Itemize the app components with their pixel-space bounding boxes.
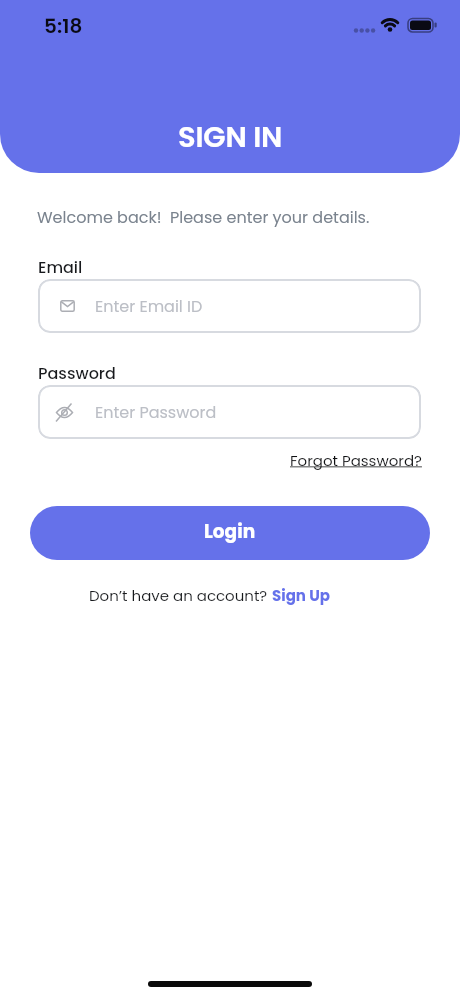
staticText: SIGN IN — [178, 117, 283, 158]
staticText: Login — [204, 519, 256, 545]
button[interactable]: Forgot Password? — [290, 450, 422, 471]
staticText: 5:18 — [44, 12, 83, 40]
staticText: Enter Email ID — [95, 295, 203, 317]
staticText: Email — [38, 256, 83, 278]
staticText: Password — [38, 362, 116, 384]
button[interactable]: Enter Email ID — [38, 279, 421, 333]
button[interactable]: Enter Password — [38, 385, 421, 439]
staticText: Don’t have an account? — [89, 585, 272, 606]
staticText: Enter Password — [95, 401, 217, 423]
button[interactable]: Sign Up — [272, 585, 330, 606]
staticText: Welcome back! Please enter your details. — [37, 206, 370, 228]
button[interactable]: Login — [30, 506, 430, 560]
